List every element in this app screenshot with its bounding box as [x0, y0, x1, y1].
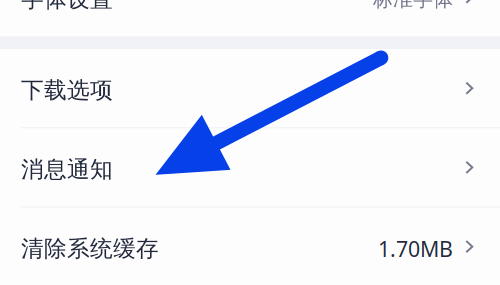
button[interactable]: 下载选项	[0, 49, 500, 127]
staticText: 清除系统缓存	[21, 235, 159, 263]
button[interactable]: 清除系统缓存	[0, 208, 500, 285]
button[interactable]: 字体设置	[0, 0, 500, 36]
staticText: 1.70MB	[378, 234, 453, 263]
staticText: 字体设置	[21, 0, 113, 13]
staticText: 标准字体	[373, 0, 453, 12]
staticText: 消息通知	[21, 156, 113, 183]
staticText: 下载选项	[21, 76, 113, 104]
button[interactable]: 消息通知	[0, 128, 500, 206]
